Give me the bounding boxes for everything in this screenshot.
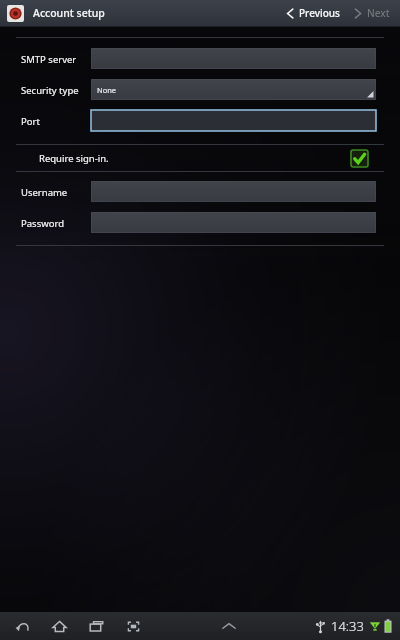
staticText: 14:33: [331, 617, 364, 635]
other: USB connected: [316, 620, 325, 633]
button[interactable]: [91, 181, 376, 202]
button[interactable]: [91, 110, 376, 131]
button[interactable]: Home: [49, 616, 69, 636]
staticText: Password: [21, 217, 64, 230]
other: Require sign-in checkbox, checked: [351, 150, 368, 167]
button[interactable]: None: [91, 79, 376, 100]
button[interactable]: Require sign-in.: [0, 145, 400, 171]
staticText: Username: [21, 186, 68, 199]
staticText: Security type: [21, 84, 79, 97]
button[interactable]: Show notifications: [218, 617, 240, 635]
staticText: Previous: [299, 6, 340, 20]
other: Wi-Fi connected: [369, 620, 381, 633]
button[interactable]: [91, 48, 376, 69]
button[interactable]: App icon: [7, 5, 24, 22]
button[interactable]: Next: [352, 4, 392, 22]
button[interactable]: Back: [12, 616, 32, 636]
staticText: None: [97, 85, 117, 95]
staticText: Port: [21, 115, 40, 128]
button[interactable]: Screenshot: [123, 616, 143, 636]
other: Battery: [384, 619, 392, 633]
button[interactable]: Recent apps: [86, 616, 106, 636]
button[interactable]: [91, 212, 376, 233]
staticText: Require sign-in.: [39, 152, 109, 165]
staticText: Next: [367, 6, 390, 20]
button[interactable]: Previous: [284, 4, 342, 22]
staticText: Account setup: [33, 6, 105, 20]
staticText: SMTP server: [21, 53, 77, 66]
